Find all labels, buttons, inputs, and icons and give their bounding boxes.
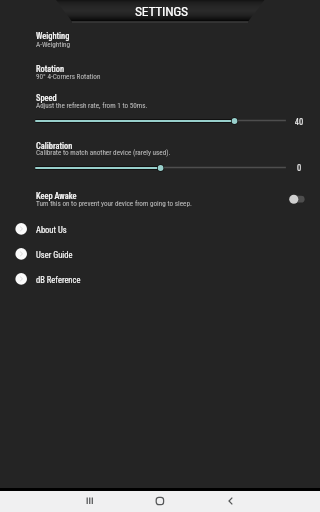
- staticText: User Guide: [36, 250, 73, 260]
- staticText: Adjust the refresh rate, from 1 to 50ms.: [36, 101, 148, 109]
- staticText: Weighting: [36, 31, 70, 41]
- staticText: Keep Awake: [36, 191, 77, 201]
- button[interactable]: Back: [206, 491, 256, 512]
- staticText: Speed: [36, 93, 57, 103]
- button[interactable]: Recent apps: [65, 491, 115, 512]
- button[interactable]: Settings title bar: [0, 0, 320, 22]
- button[interactable]: About Us: [12, 220, 132, 242]
- staticText: Calibration: [36, 141, 73, 151]
- staticText: 40: [287, 117, 311, 127]
- staticText: 0: [287, 163, 311, 173]
- staticText: dB Reference: [36, 275, 81, 285]
- button[interactable]: Calibration slider: [30, 160, 292, 176]
- staticText: About Us: [36, 225, 67, 235]
- button[interactable]: User Guide: [12, 245, 132, 267]
- staticText: 90° 4-Corners Rotation: [36, 72, 101, 80]
- button[interactable]: Home: [135, 491, 185, 512]
- staticText: Turn this on to prevent your device from…: [36, 199, 192, 207]
- staticText: SETTINGS: [135, 3, 188, 19]
- staticText: Rotation: [36, 64, 65, 74]
- button[interactable]: Speed slider: [30, 113, 292, 129]
- button[interactable]: Keep Awake switch, off: [286, 191, 310, 208]
- staticText: A-Weighting: [36, 40, 71, 48]
- button[interactable]: dB Reference: [12, 270, 132, 292]
- staticText: Calibrate to match another device (rarel…: [36, 148, 171, 156]
